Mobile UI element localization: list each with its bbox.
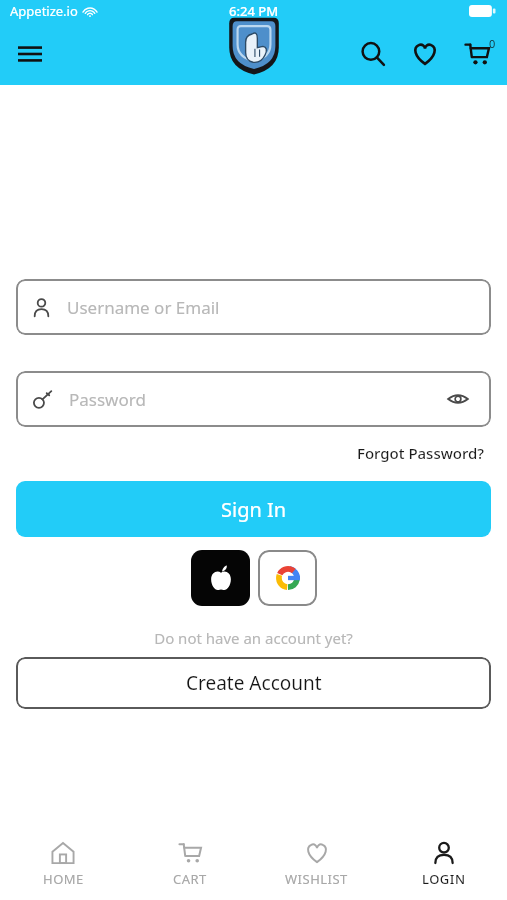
button[interactable]: WISHLIST bbox=[253, 828, 380, 900]
button[interactable]: Wishlist bbox=[403, 32, 447, 76]
button[interactable]: Username or Email bbox=[16, 279, 491, 335]
staticText: Password bbox=[69, 388, 441, 411]
staticText: Create Account bbox=[186, 670, 322, 696]
staticText: HOME bbox=[43, 870, 84, 888]
button[interactable]: Forgot Password? bbox=[353, 441, 489, 465]
button[interactable]: Menu bbox=[10, 34, 50, 74]
staticText: LOGIN bbox=[422, 870, 466, 888]
button[interactable]: Sign In bbox=[16, 481, 491, 537]
staticText: WISHLIST bbox=[285, 870, 348, 888]
button[interactable]: Show password bbox=[441, 382, 475, 416]
staticText: 0 bbox=[489, 36, 496, 51]
staticText: Forgot Password? bbox=[357, 443, 485, 463]
staticText: 6:24 PM bbox=[229, 2, 279, 20]
button[interactable]: Search bbox=[351, 32, 395, 76]
staticText: Sign In bbox=[221, 496, 287, 523]
staticText: Username or Email bbox=[67, 296, 475, 319]
button[interactable]: LOGIN bbox=[380, 828, 507, 900]
button[interactable]: Password bbox=[16, 371, 491, 427]
button[interactable]: HOME bbox=[0, 828, 126, 900]
staticText: Do not have an account yet? bbox=[0, 628, 507, 648]
staticText: CART bbox=[173, 870, 207, 888]
button[interactable]: Sign in with Google bbox=[258, 550, 317, 606]
staticText: Appetize.io bbox=[10, 2, 78, 20]
button[interactable]: Create Account bbox=[16, 657, 491, 709]
button[interactable]: Cart bbox=[455, 32, 499, 76]
button[interactable]: Logo bbox=[223, 14, 285, 77]
button[interactable]: CART bbox=[126, 828, 253, 900]
button[interactable]: Sign in with Apple bbox=[191, 550, 250, 606]
